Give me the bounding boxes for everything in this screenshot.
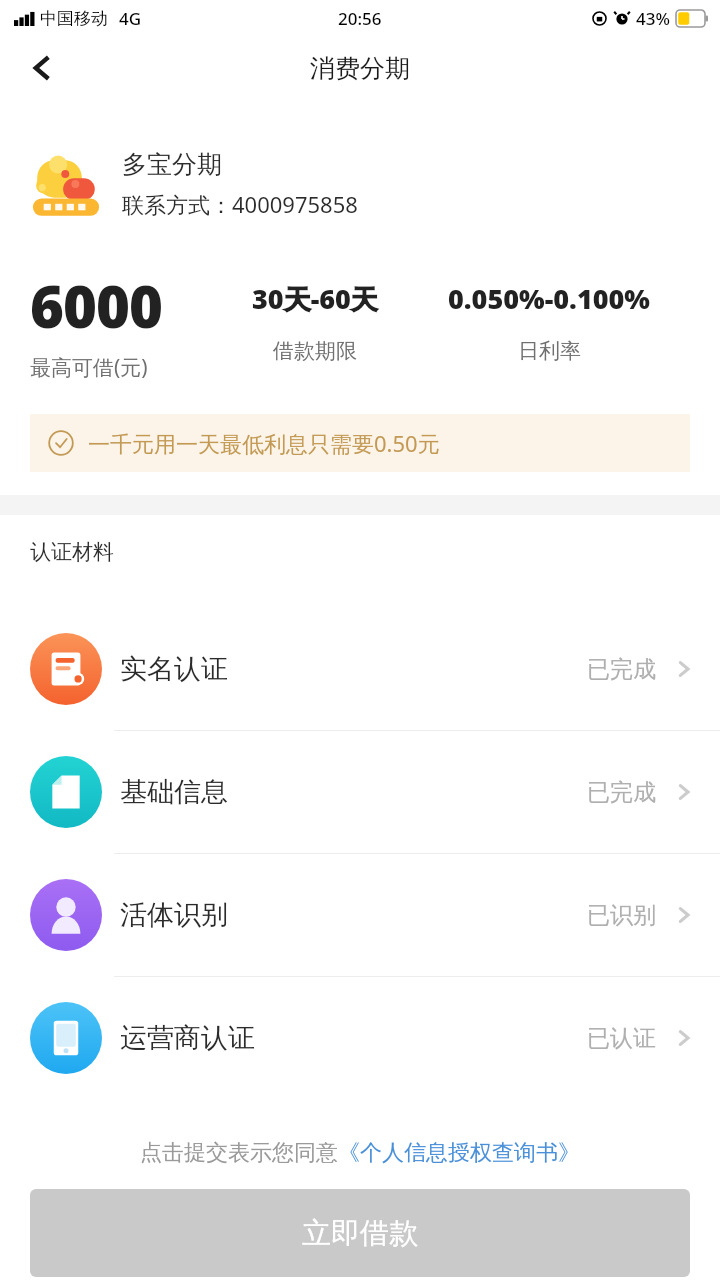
staticText: 认证材料	[30, 539, 114, 565]
staticText: 30天-60天	[252, 280, 378, 317]
staticText: 已完成	[587, 655, 656, 684]
staticText: 最高可借(元)	[30, 353, 148, 382]
staticText: 活体识别	[120, 898, 228, 932]
staticText: 借款期限	[273, 338, 357, 364]
staticText: 运营商认证	[120, 1021, 255, 1055]
staticText: 多宝分期	[122, 149, 222, 180]
staticText: 联系方式：4000975858	[122, 189, 358, 219]
staticText: 已认证	[587, 1024, 656, 1053]
staticText: 日利率	[518, 338, 581, 364]
staticText: 6000	[30, 266, 162, 345]
staticText: 已识别	[587, 901, 656, 930]
staticText: 已完成	[587, 778, 656, 807]
button[interactable]: Back	[14, 40, 70, 96]
button[interactable]: 实名认证	[0, 608, 720, 730]
button[interactable]: 点击提交表示您同意《个人信息授权查询书》	[140, 1139, 580, 1167]
staticText: 基础信息	[120, 775, 228, 809]
staticText: 一千元用一天最低利息只需要0.50元	[88, 428, 440, 458]
staticText: 立即借款	[302, 1215, 418, 1252]
staticText: 中国移动	[40, 8, 108, 29]
button[interactable]: 立即借款	[30, 1189, 690, 1277]
button[interactable]: 运营商认证	[0, 977, 720, 1099]
button[interactable]: 活体识别	[0, 854, 720, 976]
staticText: 消费分期	[310, 53, 410, 84]
button[interactable]: 基础信息	[0, 731, 720, 853]
staticText: 4G	[119, 7, 142, 30]
staticText: 43%	[636, 7, 670, 30]
staticText: 20:56	[338, 7, 382, 30]
staticText: 实名认证	[120, 652, 228, 686]
staticText: 0.050%-0.100%	[448, 280, 650, 317]
